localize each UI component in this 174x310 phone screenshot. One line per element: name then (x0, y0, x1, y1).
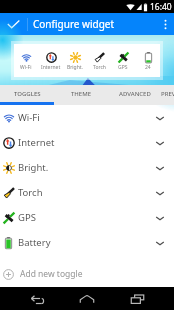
staticText: Bright. (67, 64, 83, 71)
button[interactable]: Done (0, 13, 27, 35)
button[interactable]: GPS (0, 205, 174, 230)
button[interactable]: ADVANCED (108, 85, 161, 102)
button[interactable]: Battery (0, 230, 174, 255)
button[interactable]: Bright. (63, 51, 87, 71)
staticText: Battery (18, 236, 51, 249)
staticText: PREVIEW (161, 90, 174, 98)
staticText: GPS (18, 211, 36, 224)
button[interactable]: Internet (39, 51, 63, 71)
button[interactable]: PREVIEW (161, 85, 174, 102)
button[interactable]: More options (156, 13, 174, 35)
button[interactable]: Back (23, 287, 51, 310)
button[interactable]: Torch (87, 51, 111, 71)
staticText: THEME (71, 90, 92, 98)
staticText: Wi-Fi (20, 64, 32, 71)
staticText: GPS (118, 64, 128, 71)
staticText: Wi-Fi (18, 111, 40, 124)
staticText: Internet (41, 64, 61, 71)
button[interactable]: Home (73, 287, 101, 310)
staticText: 16:40 (150, 1, 172, 13)
button[interactable]: Wi-Fi (0, 105, 174, 130)
button[interactable]: Torch (0, 180, 174, 205)
staticText: Configure widget (33, 17, 115, 31)
staticText: TOGGLES (14, 90, 41, 98)
button[interactable]: Wi-Fi (14, 51, 38, 71)
button[interactable]: GPS (111, 51, 135, 71)
staticText: Torch (18, 186, 43, 199)
staticText: ADVANCED (119, 90, 151, 98)
button[interactable]: THEME (54, 85, 108, 102)
staticText: Bright. (18, 161, 49, 174)
staticText: Torch (93, 64, 106, 71)
button[interactable]: Add new toggle (0, 261, 174, 287)
button[interactable]: Internet (0, 130, 174, 155)
button[interactable]: 24 (136, 51, 160, 71)
staticText: 24 (145, 64, 151, 71)
staticText: Internet (18, 136, 55, 149)
button[interactable]: TOGGLES (0, 85, 54, 102)
staticText: Add new toggle (20, 268, 83, 280)
button[interactable]: Recent apps (123, 287, 151, 310)
button[interactable]: Bright. (0, 155, 174, 180)
